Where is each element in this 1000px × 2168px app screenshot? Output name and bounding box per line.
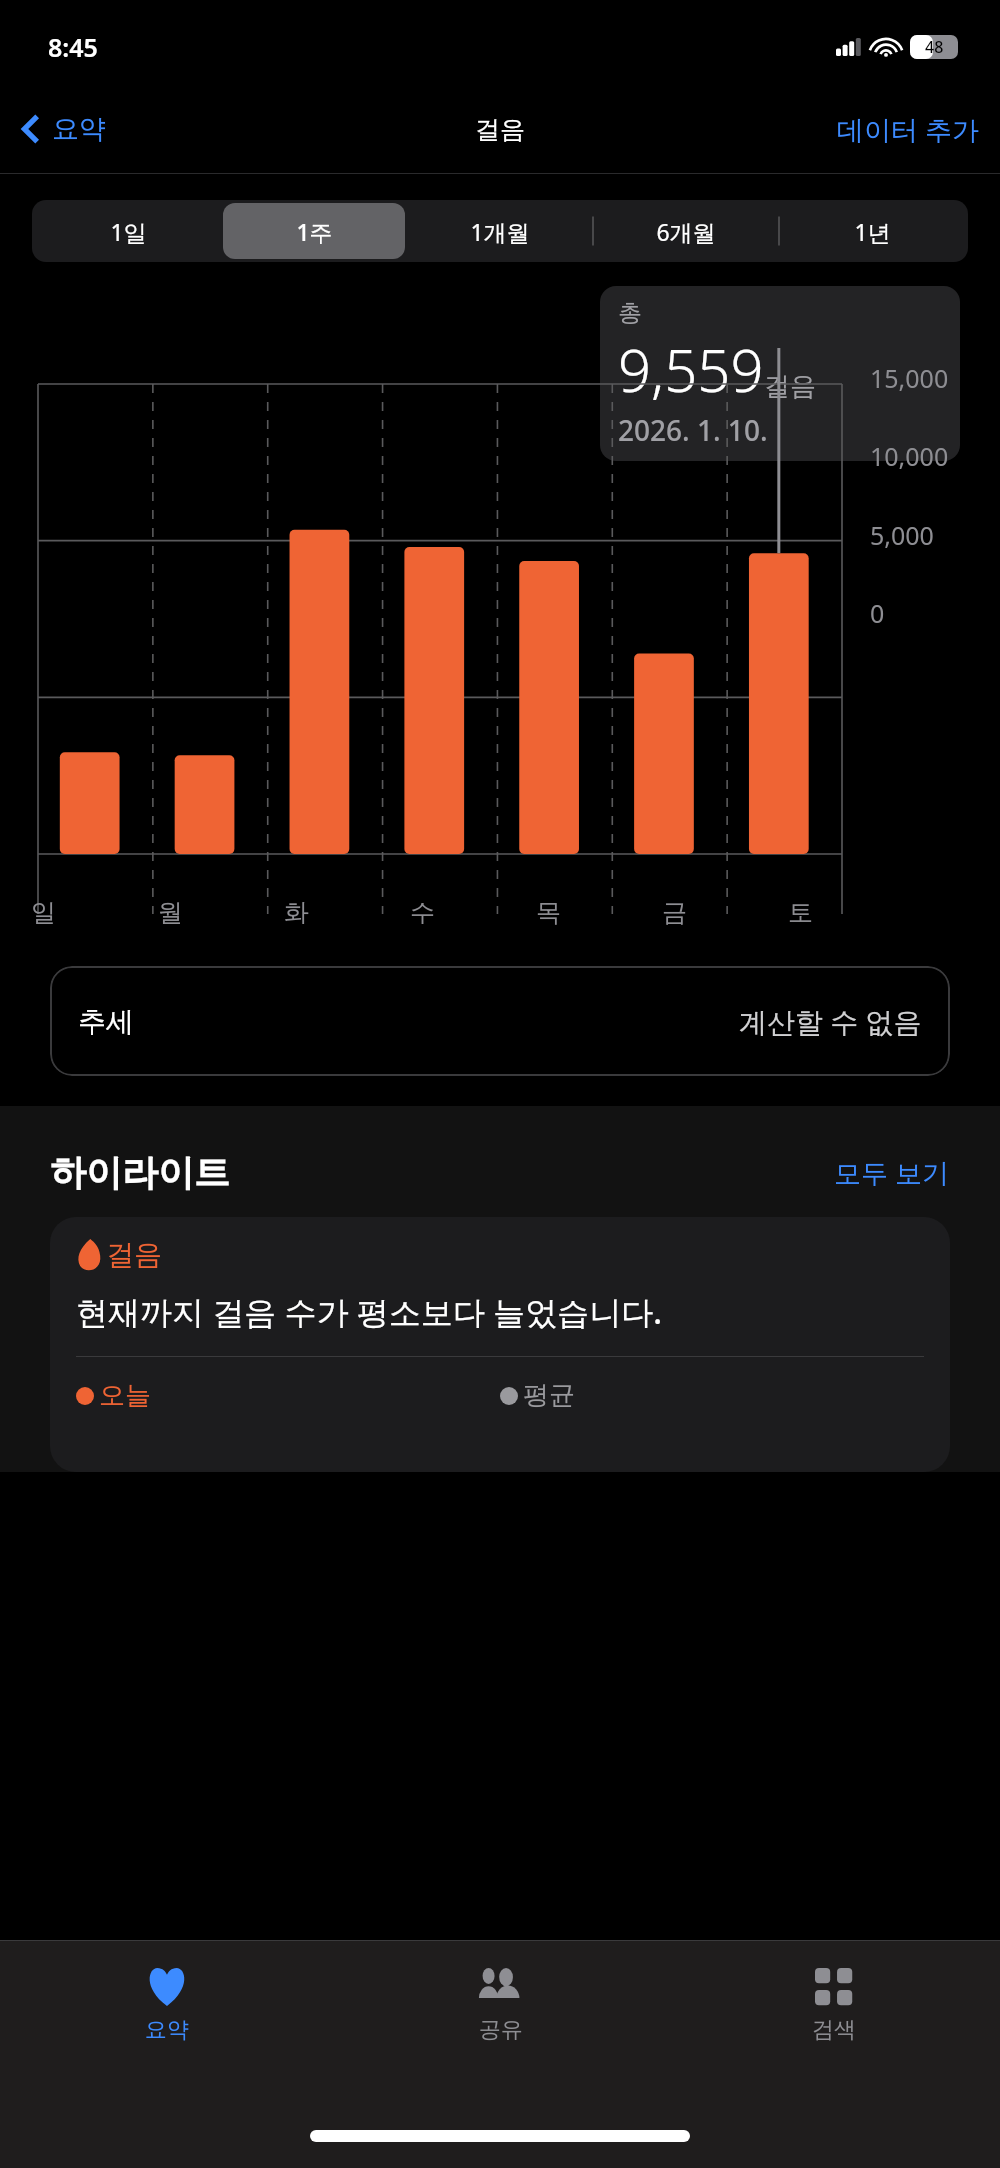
staticText: 월	[158, 897, 183, 928]
staticText: 15,000	[870, 361, 949, 395]
staticText: 검색	[812, 2016, 856, 2044]
staticText: 요약	[52, 112, 106, 146]
button[interactable]: 1주	[223, 203, 405, 259]
staticText: 평균	[523, 1379, 575, 1412]
button[interactable]: 검색	[667, 1941, 1000, 2071]
button[interactable]: 1일	[37, 203, 219, 259]
staticText: 목	[536, 897, 561, 928]
staticText: 현재까지 걸음 수가 평소보다 늘었습니다.	[76, 1290, 662, 1334]
staticText: 5,000	[870, 518, 934, 552]
staticText: 걸음	[475, 114, 525, 145]
staticText: 1년	[854, 216, 891, 247]
button[interactable]: 요약	[20, 112, 106, 146]
button[interactable]: 걸음	[50, 1217, 950, 1472]
button[interactable]: 요약	[0, 1941, 334, 2071]
staticText: 오늘	[99, 1379, 151, 1412]
staticText: 0	[870, 596, 885, 630]
staticText: 10,000	[870, 439, 949, 473]
staticText: 6개월	[656, 216, 716, 247]
staticText: 1주	[296, 216, 333, 247]
button[interactable]: 1개월	[409, 203, 591, 259]
staticText: 9,559	[618, 330, 764, 409]
staticText: 8:45	[48, 30, 98, 64]
staticText: 계산할 수 없음	[739, 1002, 922, 1040]
staticText: 48	[925, 36, 944, 58]
button[interactable]: 6개월	[595, 203, 777, 259]
button[interactable]: 추세	[50, 966, 950, 1076]
staticText: 공유	[479, 2016, 523, 2044]
staticText: 걸음	[764, 370, 816, 403]
staticText: 1일	[110, 216, 147, 247]
staticText: 일	[31, 897, 56, 928]
button[interactable]: 모두 보기	[834, 1154, 950, 1191]
staticText: 화	[284, 897, 309, 928]
staticText: 총	[618, 298, 642, 328]
staticText: 1개월	[470, 216, 530, 247]
staticText: 수	[410, 897, 435, 928]
staticText: 추세	[78, 1004, 134, 1039]
staticText: 토	[788, 897, 813, 928]
staticText: 요약	[145, 2016, 189, 2044]
button[interactable]: 1년	[781, 203, 963, 259]
button[interactable]: 데이터 추가	[837, 111, 980, 148]
staticText: 금	[662, 897, 687, 928]
staticText: 하이라이트	[50, 1150, 230, 1195]
staticText: 2026. 1. 10.	[618, 411, 768, 449]
button[interactable]: 공유	[334, 1941, 667, 2071]
staticText: 걸음	[106, 1237, 162, 1272]
